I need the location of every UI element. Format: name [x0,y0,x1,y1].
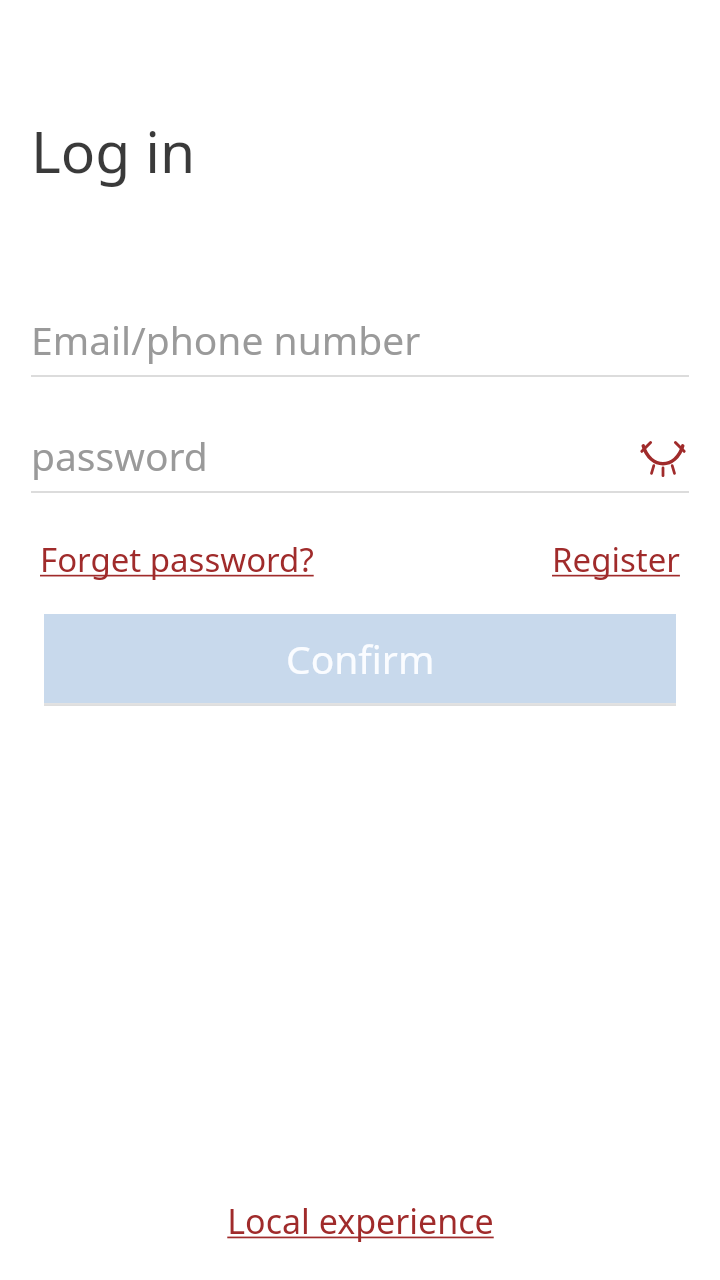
button[interactable]: Register [552,537,680,582]
staticText: password [31,429,208,480]
button[interactable]: Confirm [44,614,676,703]
button[interactable]: Email/phone number [0,313,720,377]
button[interactable]: Forget password? [40,537,314,582]
staticText: Log in [31,112,196,190]
button[interactable]: Local experience [227,1198,494,1244]
staticText: Local experience [227,1198,494,1244]
button[interactable]: Show password [637,429,689,480]
staticText: Register [552,537,680,582]
staticText: Confirm [286,632,435,685]
button[interactable]: password [0,429,720,493]
staticText: Forget password? [40,537,314,582]
staticText: Email/phone number [31,313,421,364]
